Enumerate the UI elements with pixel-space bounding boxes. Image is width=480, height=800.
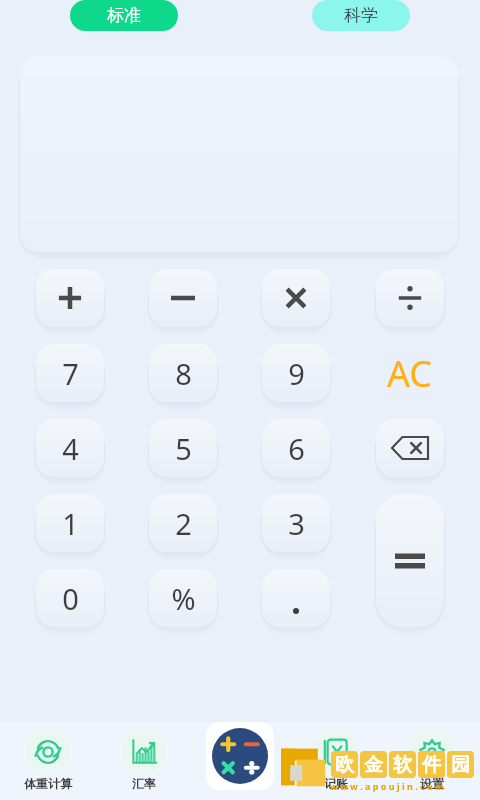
staticText: 科学 (344, 5, 378, 26)
button[interactable]: 7 (36, 344, 104, 402)
button[interactable] (262, 569, 330, 627)
staticText: 汇率 (132, 776, 156, 791)
staticText: 1 (62, 504, 79, 543)
button[interactable]: Calculator (206, 722, 274, 790)
button[interactable]: 科学 (312, 0, 410, 31)
staticText: w w w . a p o u j i n . c o m (330, 780, 444, 792)
button[interactable]: 体重计算 (0, 722, 96, 800)
staticText: 体重计算 (24, 776, 72, 791)
staticText: 0 (62, 579, 79, 618)
staticText: 4 (62, 429, 79, 468)
staticText: 6 (288, 429, 305, 468)
staticText: 标准 (107, 5, 141, 26)
button[interactable]: 汇率 (96, 722, 192, 800)
button[interactable]: Backspace (376, 419, 444, 477)
staticText: 2 (175, 504, 192, 543)
staticText: 5 (175, 429, 192, 468)
button[interactable]: 9 (262, 344, 330, 402)
button[interactable]: 5 (149, 419, 217, 477)
staticText: AC (387, 349, 433, 398)
button[interactable]: 标准 (70, 0, 178, 31)
staticText: 软 (393, 753, 412, 777)
staticText: 欧 (335, 753, 354, 777)
staticText: 金 (364, 753, 383, 777)
button[interactable]: 6 (262, 419, 330, 477)
button[interactable]: Equals (376, 494, 444, 627)
staticText: 9 (288, 354, 305, 393)
staticText: 3 (288, 504, 305, 543)
button[interactable]: 1 (36, 494, 104, 552)
staticText: % (171, 579, 196, 618)
button[interactable]: 2 (149, 494, 217, 552)
staticText: 8 (175, 354, 192, 393)
button[interactable]: AC (376, 344, 444, 402)
button[interactable]: 0 (36, 569, 104, 627)
button[interactable] (36, 269, 104, 327)
button[interactable] (262, 269, 330, 327)
button[interactable] (376, 269, 444, 327)
button[interactable]: 4 (36, 419, 104, 477)
staticText: 件 (422, 753, 441, 777)
button[interactable] (149, 269, 217, 327)
button[interactable]: 8 (149, 344, 217, 402)
staticText: 设置 (420, 776, 444, 791)
button[interactable]: % (149, 569, 217, 627)
staticText: 记账 (324, 776, 348, 791)
staticText: 7 (62, 354, 79, 393)
button[interactable]: 记账 (288, 722, 384, 800)
staticText: 园 (451, 753, 470, 777)
button[interactable]: 设置 (384, 722, 480, 800)
button[interactable]: 3 (262, 494, 330, 552)
